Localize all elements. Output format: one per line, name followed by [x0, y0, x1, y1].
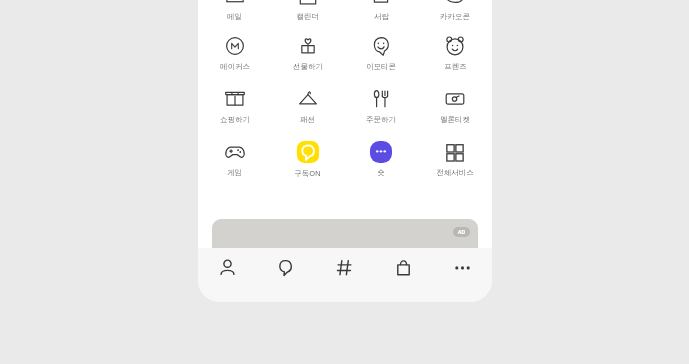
staticText: 패션 [300, 115, 315, 124]
button[interactable]: More [433, 248, 492, 302]
button[interactable]: Chats [256, 248, 315, 302]
button[interactable]: 주문하기 [344, 82, 418, 135]
staticText: AD [458, 229, 466, 236]
staticText: 주문하기 [366, 115, 396, 124]
button[interactable]: 프렌즈 [418, 29, 492, 82]
staticText: 선물하기 [293, 62, 323, 71]
button[interactable]: 메일 [198, 0, 271, 29]
button[interactable]: Friends [198, 248, 256, 302]
button[interactable]: 메이커스 [198, 29, 271, 82]
button[interactable]: 숏 [344, 135, 418, 188]
button[interactable]: Discover [315, 248, 374, 302]
button[interactable]: 이모티콘 [344, 29, 418, 82]
staticText: 전체서비스 [436, 168, 474, 177]
button[interactable]: 구독ON [271, 135, 344, 188]
staticText: 게임 [227, 168, 242, 177]
button[interactable]: Shopping [374, 248, 433, 302]
button[interactable]: 캘린더 [271, 0, 344, 29]
staticText: 쇼핑하기 [220, 115, 250, 124]
button[interactable]: 전체서비스 [418, 135, 492, 188]
button[interactable]: 서랍 [344, 0, 418, 29]
staticText: 서랍 [374, 12, 389, 21]
staticText: 메이커스 [220, 62, 250, 71]
staticText: 구독ON [294, 168, 321, 178]
staticText: 이모티콘 [366, 62, 396, 71]
button[interactable]: 쇼핑하기 [198, 82, 271, 135]
button[interactable]: 카카오콘 [418, 0, 492, 29]
staticText: 캘린더 [296, 12, 319, 21]
button[interactable]: 멜론티켓 [418, 82, 492, 135]
button[interactable]: 선물하기 [271, 29, 344, 82]
button[interactable]: 게임 [198, 135, 271, 188]
staticText: 숏 [377, 168, 385, 177]
staticText: 멜론티켓 [440, 115, 470, 124]
staticText: 카카오콘 [440, 12, 470, 21]
button[interactable]: AD [212, 219, 478, 259]
staticText: 프렌즈 [444, 62, 467, 71]
staticText: 메일 [227, 12, 242, 21]
button[interactable]: 패션 [271, 82, 344, 135]
